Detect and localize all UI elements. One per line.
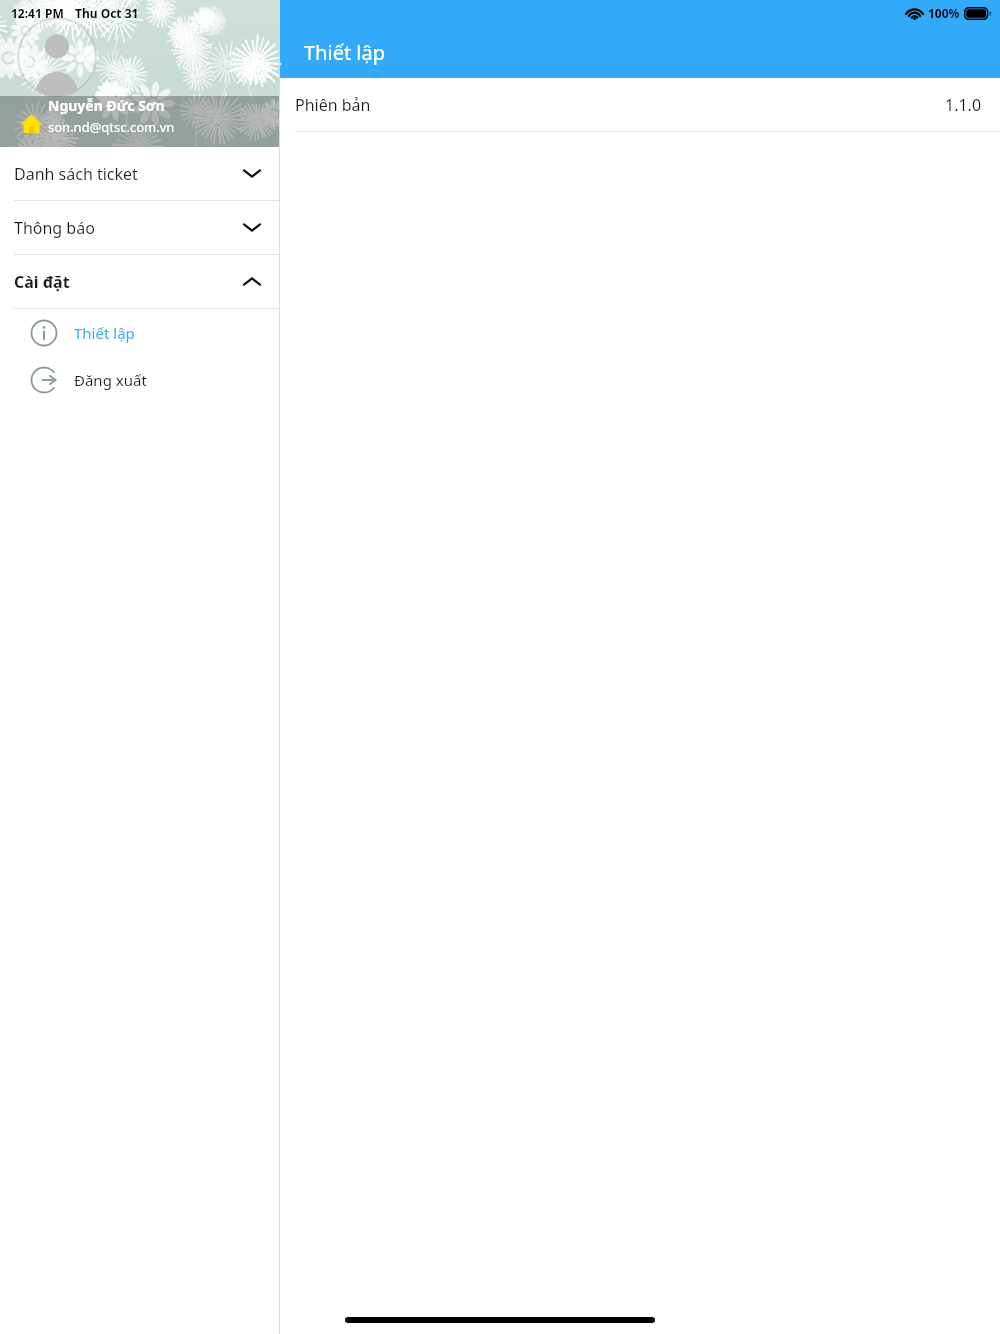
staticText: 100% — [928, 5, 960, 21]
staticText: Thu Oct 31 — [75, 5, 139, 21]
staticText: Thiết lập — [304, 39, 386, 66]
staticText: 12:41 PM — [11, 5, 64, 21]
button[interactable]: Thiết lập — [0, 309, 279, 356]
other: Đăng xuất — [29, 365, 59, 395]
staticText: Danh sách ticket — [14, 163, 138, 185]
staticText: Đăng xuất — [74, 370, 147, 390]
staticText: son.nd@qtsc.com.vn — [48, 118, 175, 136]
button[interactable]: Danh sách ticket — [0, 147, 279, 200]
button[interactable]: Cài đặt — [0, 255, 279, 308]
button[interactable]: Thông báo — [0, 201, 279, 254]
other: Thiết lập — [29, 318, 59, 348]
button[interactable]: Đăng xuất — [0, 356, 279, 403]
button[interactable]: Phiên bản — [279, 78, 1000, 131]
staticText: Cài đặt — [14, 271, 70, 293]
staticText: Phiên bản — [295, 94, 371, 116]
staticText: Thiết lập — [74, 323, 135, 343]
staticText: Nguyễn Đức Sơn — [48, 96, 165, 115]
staticText: 1.1.0 — [945, 94, 982, 116]
staticText: Thông báo — [14, 217, 95, 239]
